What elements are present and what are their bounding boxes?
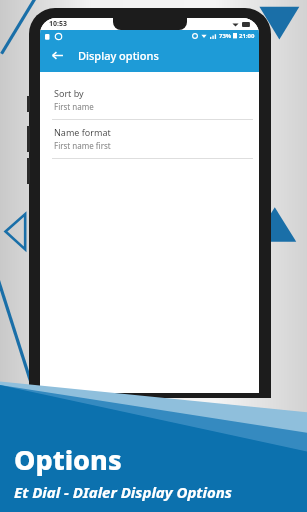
- staticText: First name: [54, 101, 94, 112]
- staticText: 73%: [219, 32, 232, 40]
- staticText: Et Dial - DIaler Display Options: [14, 482, 232, 502]
- staticText: 21:00: [239, 32, 255, 40]
- button[interactable]: Back: [44, 42, 70, 68]
- staticText: First name first: [54, 140, 111, 151]
- staticText: Display options: [78, 48, 159, 63]
- staticText: 10:53: [49, 19, 67, 29]
- staticText: Options: [14, 441, 122, 478]
- button[interactable]: Name format: [40, 120, 259, 158]
- staticText: Sort by: [54, 87, 84, 99]
- button[interactable]: Sort by: [40, 81, 259, 119]
- staticText: Name format: [54, 126, 111, 138]
